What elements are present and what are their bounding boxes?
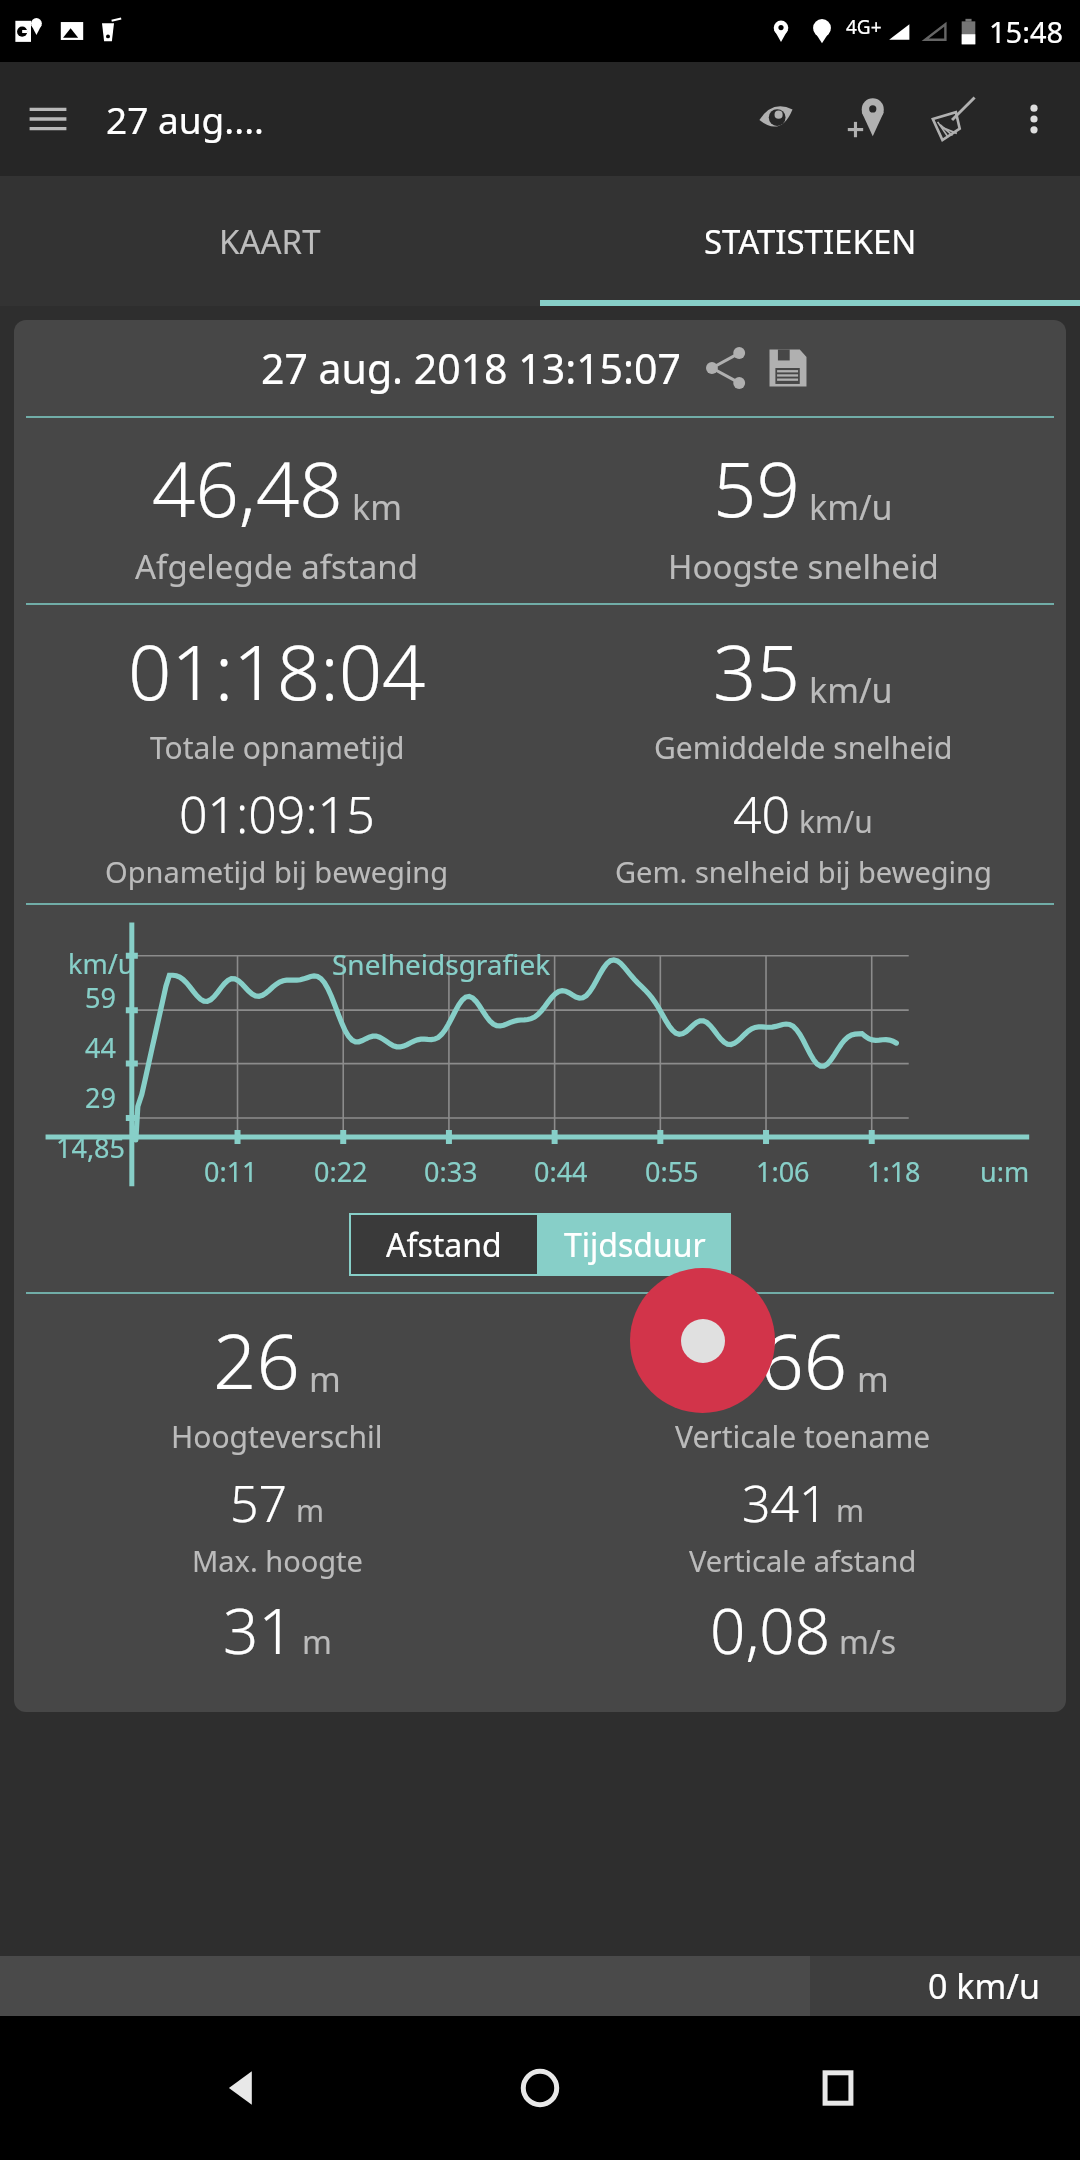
staticText: Hoogste snelheid (668, 544, 939, 589)
staticText: 0:44 (534, 1153, 588, 1190)
button[interactable]: Recent apps (783, 2033, 893, 2143)
staticText: 35 (713, 619, 800, 723)
staticText: Gemiddelde snelheid (654, 727, 953, 768)
button[interactable]: Back (188, 2033, 298, 2143)
button[interactable]: STATISTIEKEN (540, 176, 1080, 306)
staticText: 27 aug.... (106, 94, 264, 144)
staticText: 341 (742, 1469, 828, 1537)
staticText: 46,48 (152, 436, 343, 540)
button[interactable]: KAART (0, 176, 540, 306)
staticText: 40 (733, 780, 791, 848)
staticText: km (352, 484, 402, 530)
button[interactable]: Home (485, 2033, 595, 2143)
button[interactable]: Open navigation drawer (8, 79, 88, 159)
staticText: m (857, 1356, 889, 1402)
button[interactable]: Tijdsduur (539, 1213, 731, 1276)
staticText: 0:33 (424, 1153, 478, 1190)
staticText: m/s (839, 1620, 897, 1664)
staticText: 4G+ (846, 14, 882, 40)
staticText: 166 (717, 1308, 848, 1412)
staticText: Snelheidsgrafiek (332, 945, 551, 983)
staticText: 0:22 (314, 1153, 368, 1190)
staticText: 29 (85, 1079, 116, 1116)
button[interactable]: Save (757, 337, 819, 399)
staticText: Verticale toename (675, 1416, 931, 1457)
staticText: m (309, 1356, 341, 1402)
staticText: 31 (223, 1588, 294, 1672)
staticText: 15:48 (989, 12, 1064, 51)
staticText: 0:55 (645, 1153, 699, 1190)
staticText: STATISTIEKEN (704, 219, 917, 264)
staticText: Gem. snelheid bij beweging (615, 852, 992, 891)
staticText: m (296, 1490, 325, 1531)
staticText: 27 aug. 2018 13:15:07 (261, 340, 681, 396)
staticText: Afgelegde afstand (135, 544, 419, 589)
staticText: km/u (809, 667, 893, 713)
button[interactable]: Add waypoint (824, 76, 910, 162)
staticText: Totale opnametijd (150, 727, 405, 768)
staticText: Max. hoogte (192, 1541, 363, 1580)
staticText: m (302, 1620, 332, 1664)
staticText: 0:11 (204, 1153, 258, 1190)
staticText: 26 (213, 1308, 300, 1412)
staticText: m (836, 1490, 865, 1531)
staticText: km/u (68, 945, 135, 982)
staticText: 59 (85, 979, 116, 1016)
staticText: 0,08 (710, 1588, 831, 1672)
staticText: 01:18:04 (128, 619, 426, 723)
staticText: 1:18 (867, 1153, 921, 1190)
staticText: Hoogteverschil (171, 1416, 383, 1457)
button[interactable]: Share (695, 337, 757, 399)
staticText: Afstand (386, 1223, 502, 1267)
button[interactable]: More options (996, 81, 1072, 157)
staticText: km/u (799, 801, 873, 842)
button[interactable]: Record (630, 1268, 775, 1413)
staticText: KAART (219, 219, 321, 264)
button[interactable]: Afstand (351, 1215, 537, 1274)
staticText: 1:06 (756, 1153, 810, 1190)
staticText: Verticale afstand (689, 1541, 917, 1580)
staticText: u:m (980, 1153, 1030, 1190)
button[interactable]: Clear (910, 76, 996, 162)
staticText: 0 km/u (928, 1963, 1040, 2009)
staticText: 01:09:15 (179, 780, 375, 848)
button[interactable]: Show track (738, 76, 824, 162)
staticText: 57 (230, 1469, 288, 1537)
staticText: 14,85 (56, 1129, 126, 1166)
staticText: km/u (809, 484, 893, 530)
staticText: 44 (85, 1029, 116, 1066)
staticText: Tijdsduur (564, 1223, 706, 1267)
staticText: Opnametijd bij beweging (105, 852, 449, 891)
staticText: 59 (713, 436, 800, 540)
